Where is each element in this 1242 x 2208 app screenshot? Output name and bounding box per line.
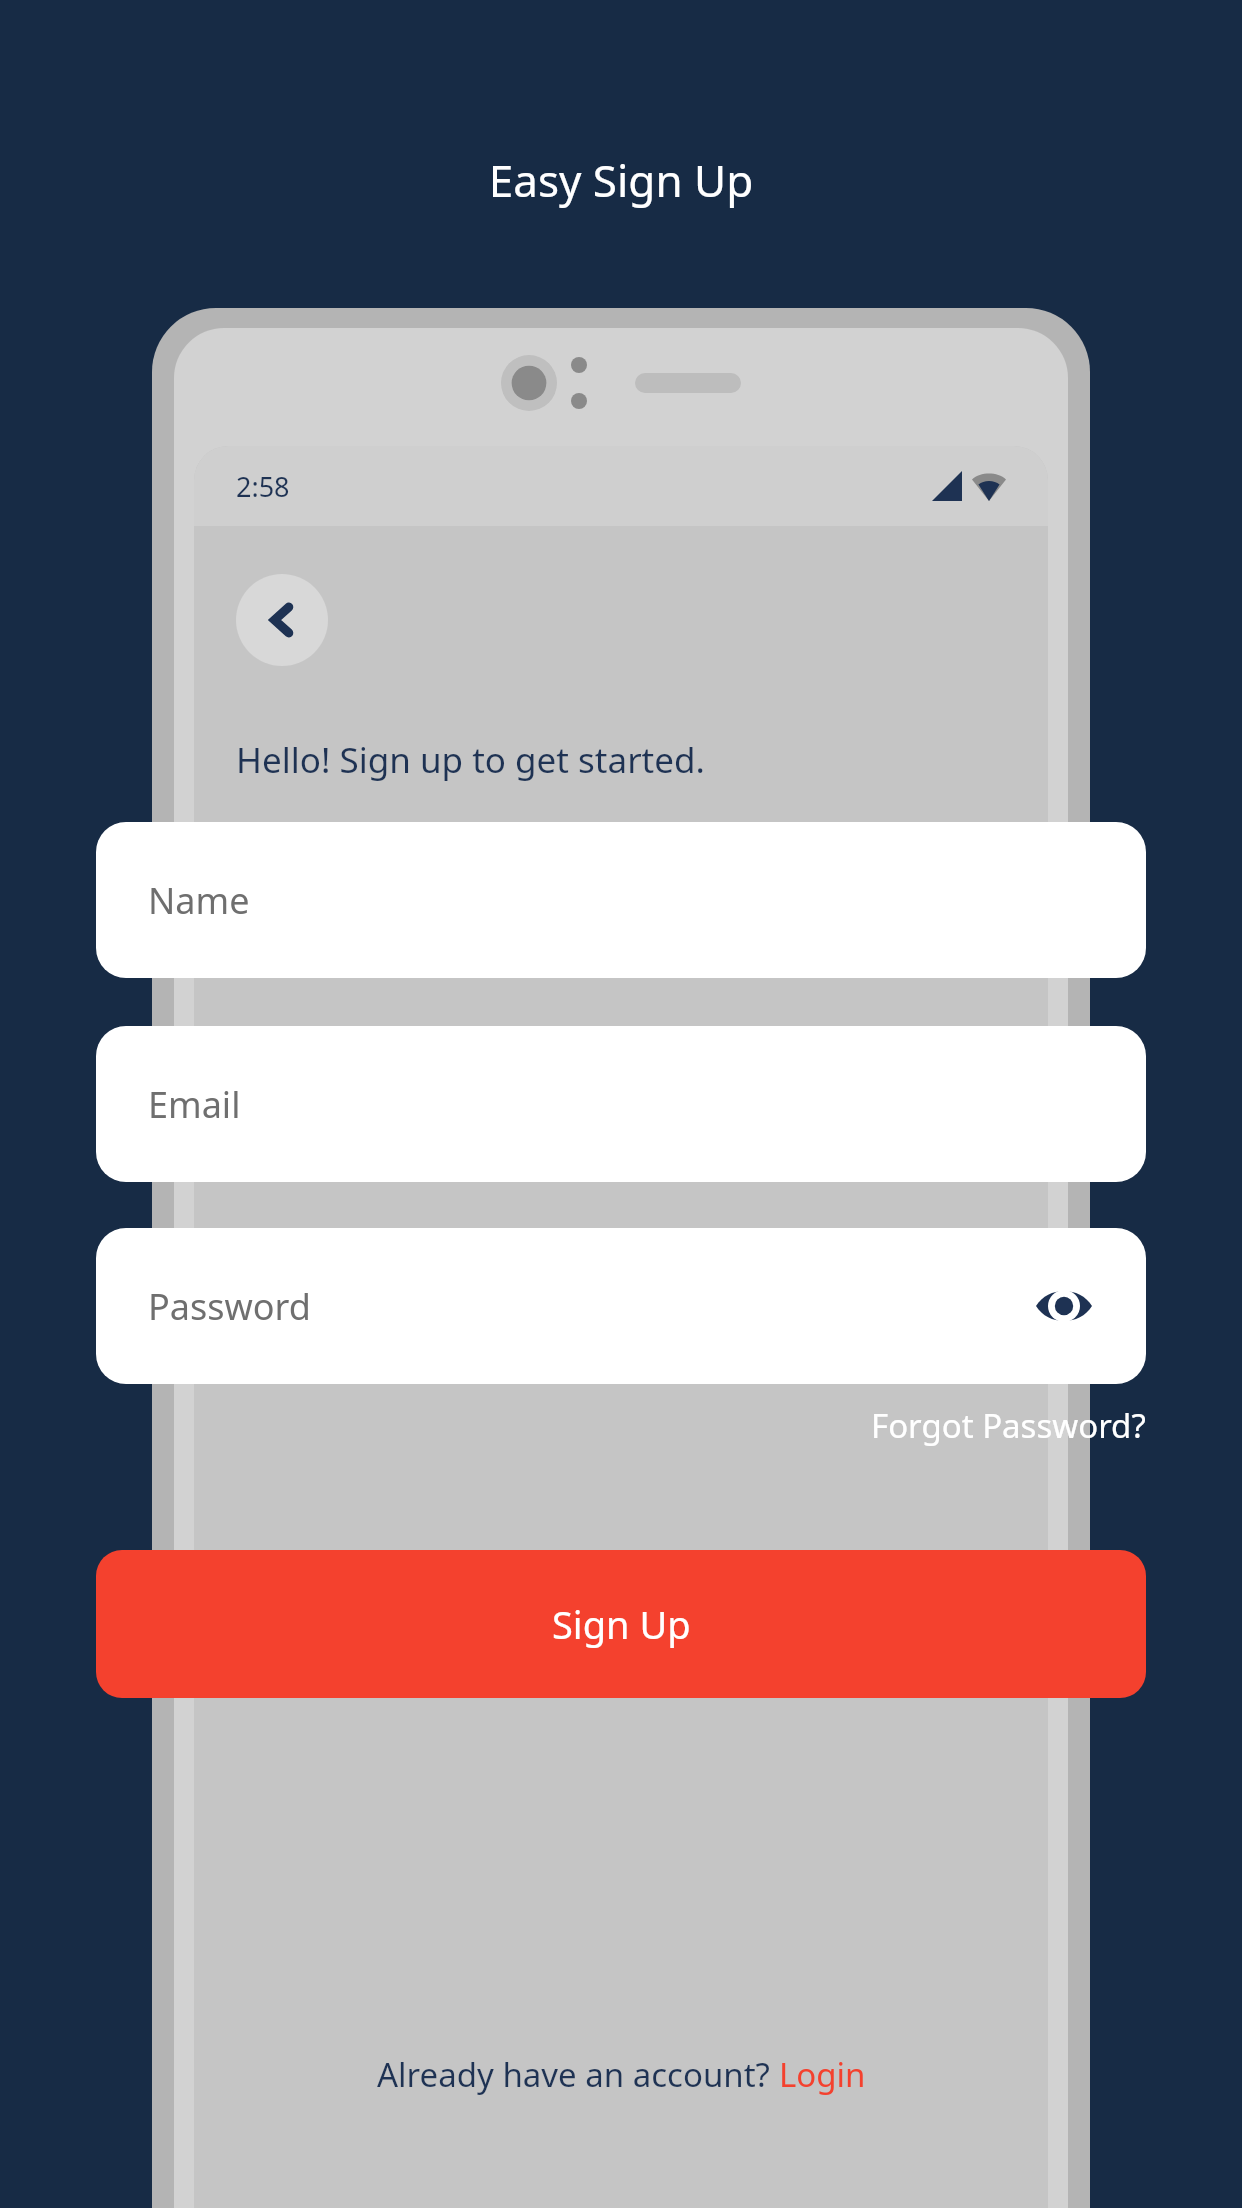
staticText: Email (148, 1080, 241, 1129)
staticText: Easy Sign Up (0, 150, 1242, 210)
button[interactable]: Sign Up (96, 1550, 1146, 1698)
staticText: Name (148, 876, 250, 925)
staticText: Password (148, 1282, 311, 1331)
staticText: Forgot Password? (871, 1403, 1146, 1448)
button[interactable]: Back (236, 574, 328, 666)
button[interactable]: Email (96, 1026, 1146, 1182)
staticText: Sign Up (552, 1598, 691, 1650)
button[interactable]: Forgot Password? (700, 1392, 1146, 1458)
staticText: Hello! Sign up to get started. (236, 736, 705, 784)
button[interactable]: Login (779, 2052, 866, 2097)
button[interactable]: Name (96, 822, 1146, 978)
staticText: Already have an account? (377, 2052, 779, 2097)
staticText: Login (779, 2052, 866, 2097)
button[interactable]: Show password (1034, 1276, 1094, 1336)
button[interactable]: Password (96, 1228, 1146, 1384)
staticText: 2:58 (236, 468, 290, 505)
